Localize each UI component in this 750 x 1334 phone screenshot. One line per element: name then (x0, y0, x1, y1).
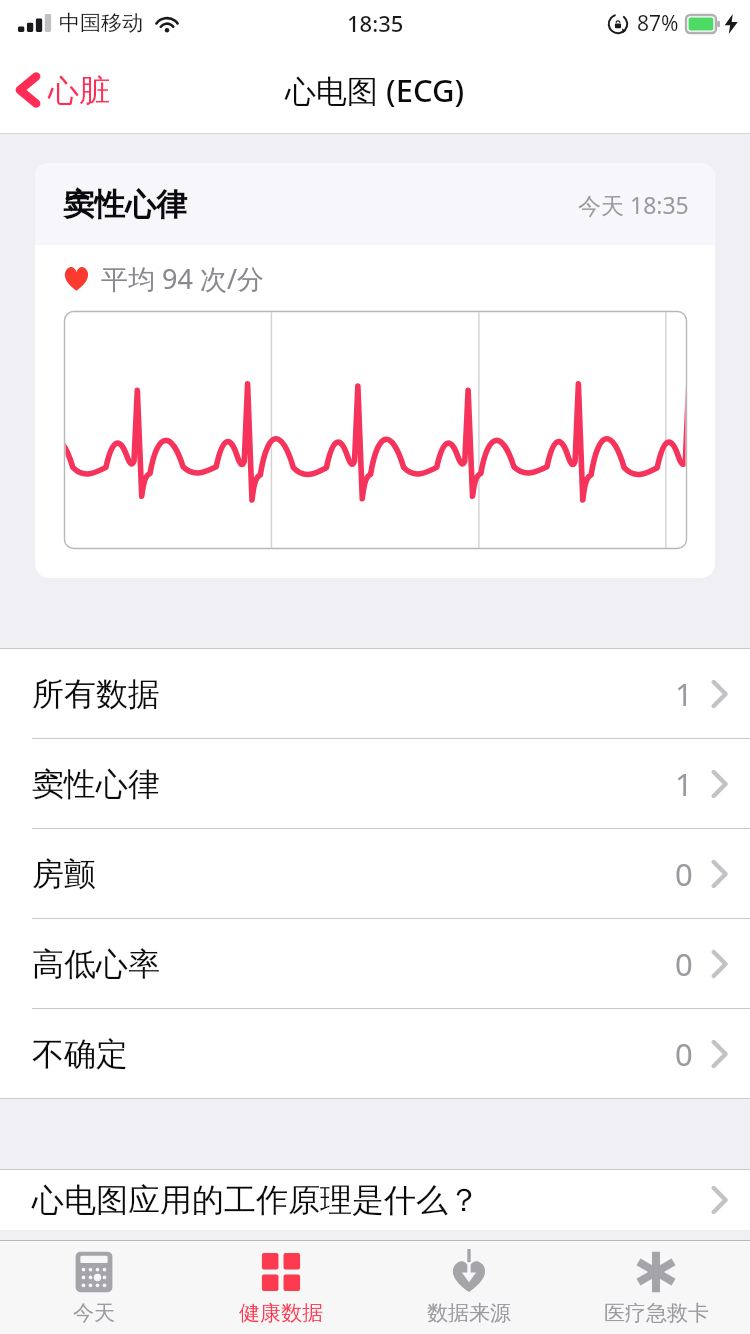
staticText: 今天 18:35 (578, 189, 689, 220)
staticText: 所有数据 (32, 674, 160, 714)
button[interactable]: 数据来源 (376, 1241, 562, 1334)
button[interactable]: 今天 (1, 1241, 187, 1334)
button[interactable]: 不确定 (0, 1009, 750, 1098)
button[interactable]: 心电图应用的工作原理是什么？ (0, 1170, 750, 1230)
staticText: 心电图应用的工作原理是什么？ (32, 1180, 480, 1220)
staticText: 心电图 (ECG) (285, 69, 465, 111)
button[interactable]: 所有数据 (0, 649, 750, 738)
button[interactable]: 医疗急救卡 (563, 1241, 749, 1334)
staticText: 高低心率 (32, 944, 160, 984)
staticText: 18:35 (347, 8, 404, 38)
staticText: 窦性心律 (32, 764, 160, 804)
staticText: 87% (637, 9, 679, 38)
staticText: 医疗急救卡 (604, 1300, 709, 1326)
staticText: 房颤 (32, 854, 96, 894)
staticText: 1 (675, 673, 693, 715)
button[interactable]: 健康数据 (188, 1241, 374, 1334)
button[interactable]: 房颤 (0, 829, 750, 918)
button[interactable]: 高低心率 (0, 919, 750, 1008)
staticText: 中国移动 (59, 10, 143, 36)
staticText: 0 (675, 943, 693, 985)
staticText: 0 (675, 1033, 693, 1075)
staticText: 今天 (73, 1300, 115, 1326)
staticText: 不确定 (32, 1034, 128, 1074)
staticText: 1 (675, 763, 693, 805)
staticText: 平均 94 次/分 (101, 260, 264, 297)
staticText: 心脏 (48, 71, 110, 110)
button[interactable]: 窦性心律 (35, 163, 715, 578)
staticText: 健康数据 (239, 1300, 323, 1326)
staticText: 窦性心律 (63, 185, 187, 224)
button[interactable]: 心脏 (0, 62, 128, 118)
staticText: 数据来源 (427, 1300, 511, 1326)
staticText: 0 (675, 853, 693, 895)
button[interactable]: 窦性心律 (0, 739, 750, 828)
